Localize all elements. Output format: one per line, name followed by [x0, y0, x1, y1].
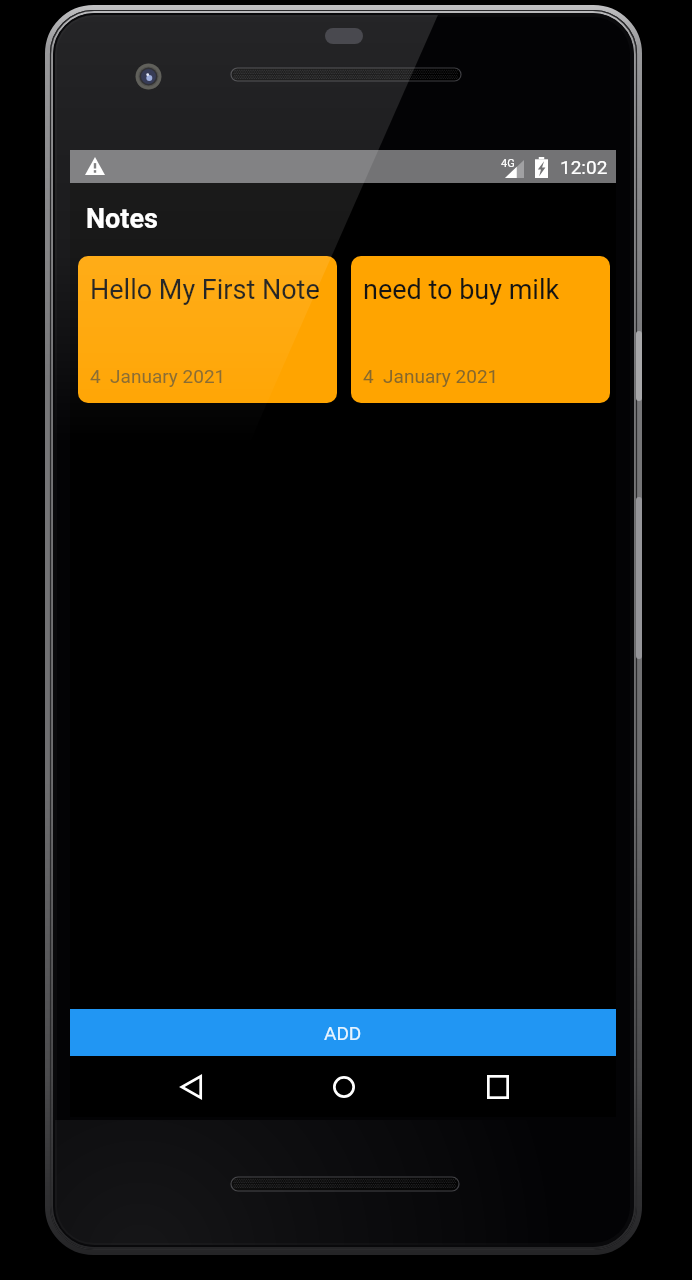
staticText: 12:02: [560, 156, 608, 178]
staticText: need to buy milk: [363, 274, 560, 306]
staticText: 4 January 2021: [363, 365, 499, 387]
button[interactable]: need to buy milk: [351, 256, 610, 403]
staticText: 4 January 2021: [90, 365, 226, 387]
staticText: ADD: [324, 1022, 362, 1044]
button[interactable]: ADD: [70, 1009, 616, 1056]
staticText: Hello My First Note: [90, 274, 320, 306]
button[interactable]: Hello My First Note: [78, 256, 337, 403]
button[interactable]: Back: [160, 1056, 221, 1117]
staticText: Notes: [86, 203, 158, 235]
staticText: 4G: [501, 157, 515, 170]
button[interactable]: Home: [313, 1056, 374, 1117]
button[interactable]: Recent apps: [467, 1056, 528, 1117]
